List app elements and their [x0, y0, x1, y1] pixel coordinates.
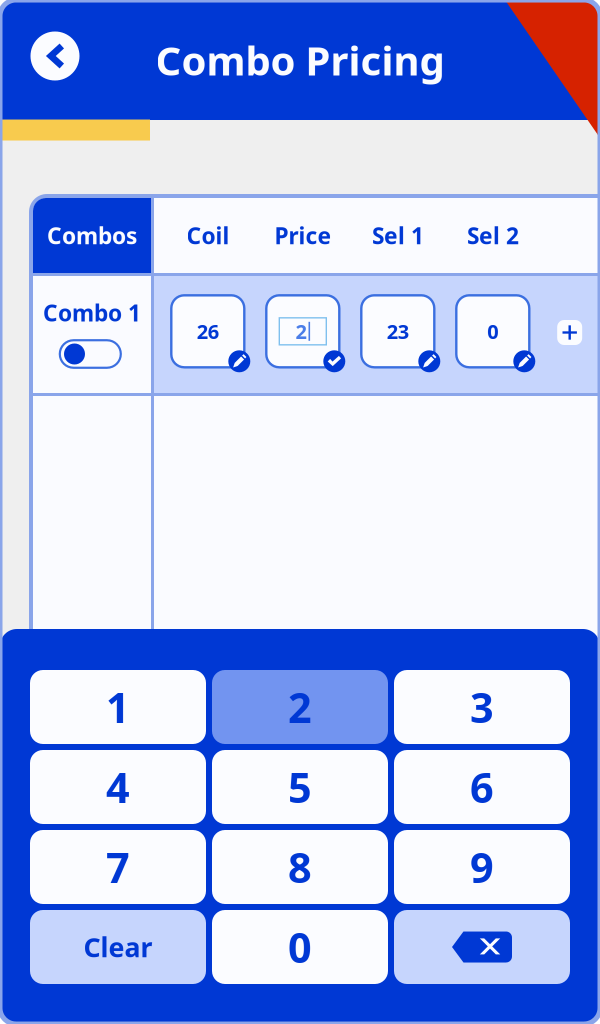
- button[interactable]: 2: [212, 670, 388, 744]
- staticText: Combos: [47, 220, 137, 250]
- button[interactable]: 7: [30, 830, 206, 904]
- staticText: Sel 2: [467, 220, 519, 250]
- button[interactable]: Delete: [394, 910, 570, 984]
- staticText: 0: [487, 318, 498, 345]
- staticText: 26: [197, 318, 219, 345]
- button[interactable]: Edit 2: [261, 290, 345, 373]
- staticText: 4: [106, 760, 130, 814]
- button[interactable]: 9: [394, 830, 570, 904]
- staticText: Coil: [186, 220, 229, 250]
- staticText: 2: [288, 680, 312, 734]
- button[interactable]: Edit 0: [451, 290, 535, 373]
- staticText: 23: [387, 318, 409, 345]
- button[interactable]: 3: [394, 670, 570, 744]
- staticText: 2: [295, 318, 306, 345]
- staticText: 9: [470, 840, 494, 894]
- button[interactable]: Add combo: [557, 320, 582, 345]
- button[interactable]: Edit 26: [166, 290, 250, 373]
- staticText: 5: [288, 760, 312, 814]
- staticText: 8: [288, 840, 312, 894]
- button[interactable]: 4: [30, 750, 206, 824]
- button[interactable]: Edit 23: [356, 290, 440, 373]
- button[interactable]: 8: [212, 830, 388, 904]
- button[interactable]: 6: [394, 750, 570, 824]
- staticText: 3: [470, 680, 494, 734]
- staticText: 6: [470, 760, 494, 814]
- button[interactable]: Back: [23, 24, 87, 88]
- staticText: Sel 1: [372, 220, 424, 250]
- button[interactable]: 1: [30, 670, 206, 744]
- button[interactable]: Combo 1 enabled: [59, 339, 122, 369]
- button[interactable]: Clear: [30, 910, 206, 984]
- staticText: Clear: [83, 929, 152, 965]
- staticText: Combo 1: [43, 298, 141, 328]
- staticText: Price: [274, 220, 331, 250]
- button[interactable]: 5: [212, 750, 388, 824]
- staticText: 0: [288, 920, 312, 974]
- button[interactable]: 0: [212, 910, 388, 984]
- staticText: Combo Pricing: [155, 33, 444, 86]
- staticText: 7: [106, 840, 130, 894]
- staticText: 1: [106, 680, 130, 734]
